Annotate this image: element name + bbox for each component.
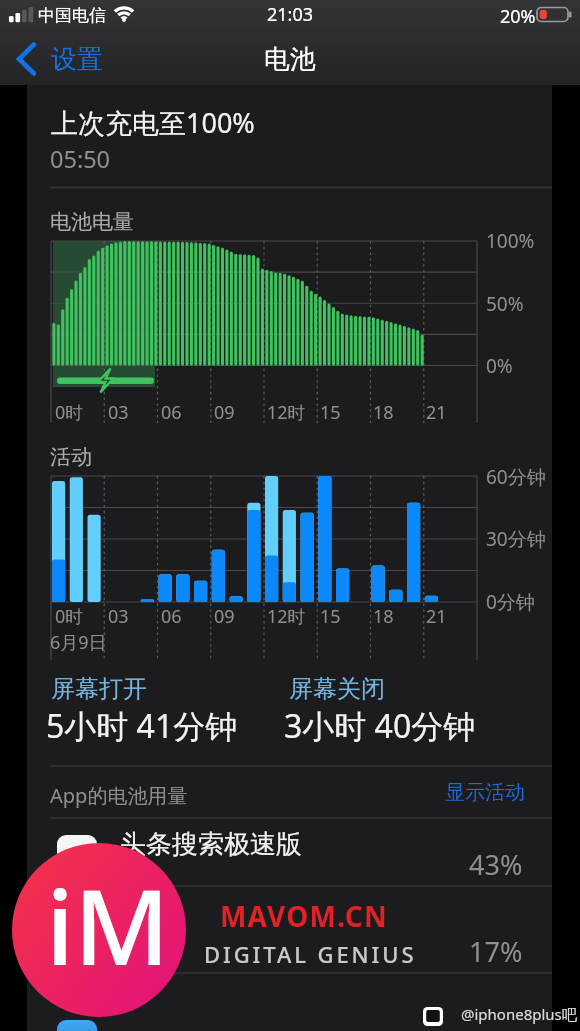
staticText: 18 xyxy=(373,400,394,425)
staticText: iM xyxy=(46,854,170,996)
staticText: 21 xyxy=(426,400,447,425)
staticText: 100% xyxy=(486,228,535,254)
staticText: 09 xyxy=(214,400,235,425)
staticText: 50% xyxy=(486,291,524,317)
staticText: 05:50 xyxy=(50,143,111,175)
staticText: 中国电信 xyxy=(38,5,106,26)
staticText: 20% xyxy=(500,4,536,29)
staticText: 5小时 41分钟 xyxy=(46,704,238,748)
staticText: 12时 xyxy=(267,604,306,629)
staticText: 6月9日 xyxy=(50,630,107,655)
staticText: 21:03 xyxy=(267,2,314,27)
staticText: App的电池用量 xyxy=(50,782,188,809)
staticText: MAVOM.CN xyxy=(220,897,388,935)
staticText: 上次充电至100% xyxy=(51,104,255,141)
staticText: 06 xyxy=(161,604,182,629)
staticText: 屏幕关闭 xyxy=(289,674,385,704)
staticText: 17% xyxy=(469,933,523,970)
staticText: 21 xyxy=(426,604,447,629)
staticText: 屏幕打开 xyxy=(51,674,147,704)
staticText: 设置 xyxy=(51,43,103,76)
staticText: 15 xyxy=(320,604,341,629)
staticText: 0% xyxy=(486,353,513,379)
staticText: 60分钟 xyxy=(486,464,546,490)
staticText: 06 xyxy=(161,400,182,425)
button[interactable]: 设置 xyxy=(16,33,126,85)
button[interactable]: 显示活动 xyxy=(437,774,533,811)
staticText: 头条搜索极速版 xyxy=(120,828,302,861)
staticText: 电池 xyxy=(264,43,316,76)
staticText: 18 xyxy=(373,604,394,629)
staticText: 0时 xyxy=(55,400,84,425)
staticText: 0时 xyxy=(55,604,84,629)
staticText: 0分钟 xyxy=(486,589,535,615)
staticText: 43% xyxy=(469,846,523,883)
staticText: 电池电量 xyxy=(50,209,134,235)
staticText: 15 xyxy=(320,400,341,425)
staticText: 3小时 40分钟 xyxy=(284,704,476,748)
staticText: 09 xyxy=(214,604,235,629)
staticText: DIGITAL GENIUS xyxy=(204,939,417,969)
staticText: 12时 xyxy=(267,400,306,425)
staticText: 30分钟 xyxy=(486,526,546,552)
staticText: 03 xyxy=(108,604,129,629)
staticText: 显示活动 xyxy=(445,780,525,805)
staticText: @iphone8plus吧 xyxy=(461,1004,577,1024)
staticText: 03 xyxy=(108,400,129,425)
staticText: 活动 xyxy=(50,444,92,470)
